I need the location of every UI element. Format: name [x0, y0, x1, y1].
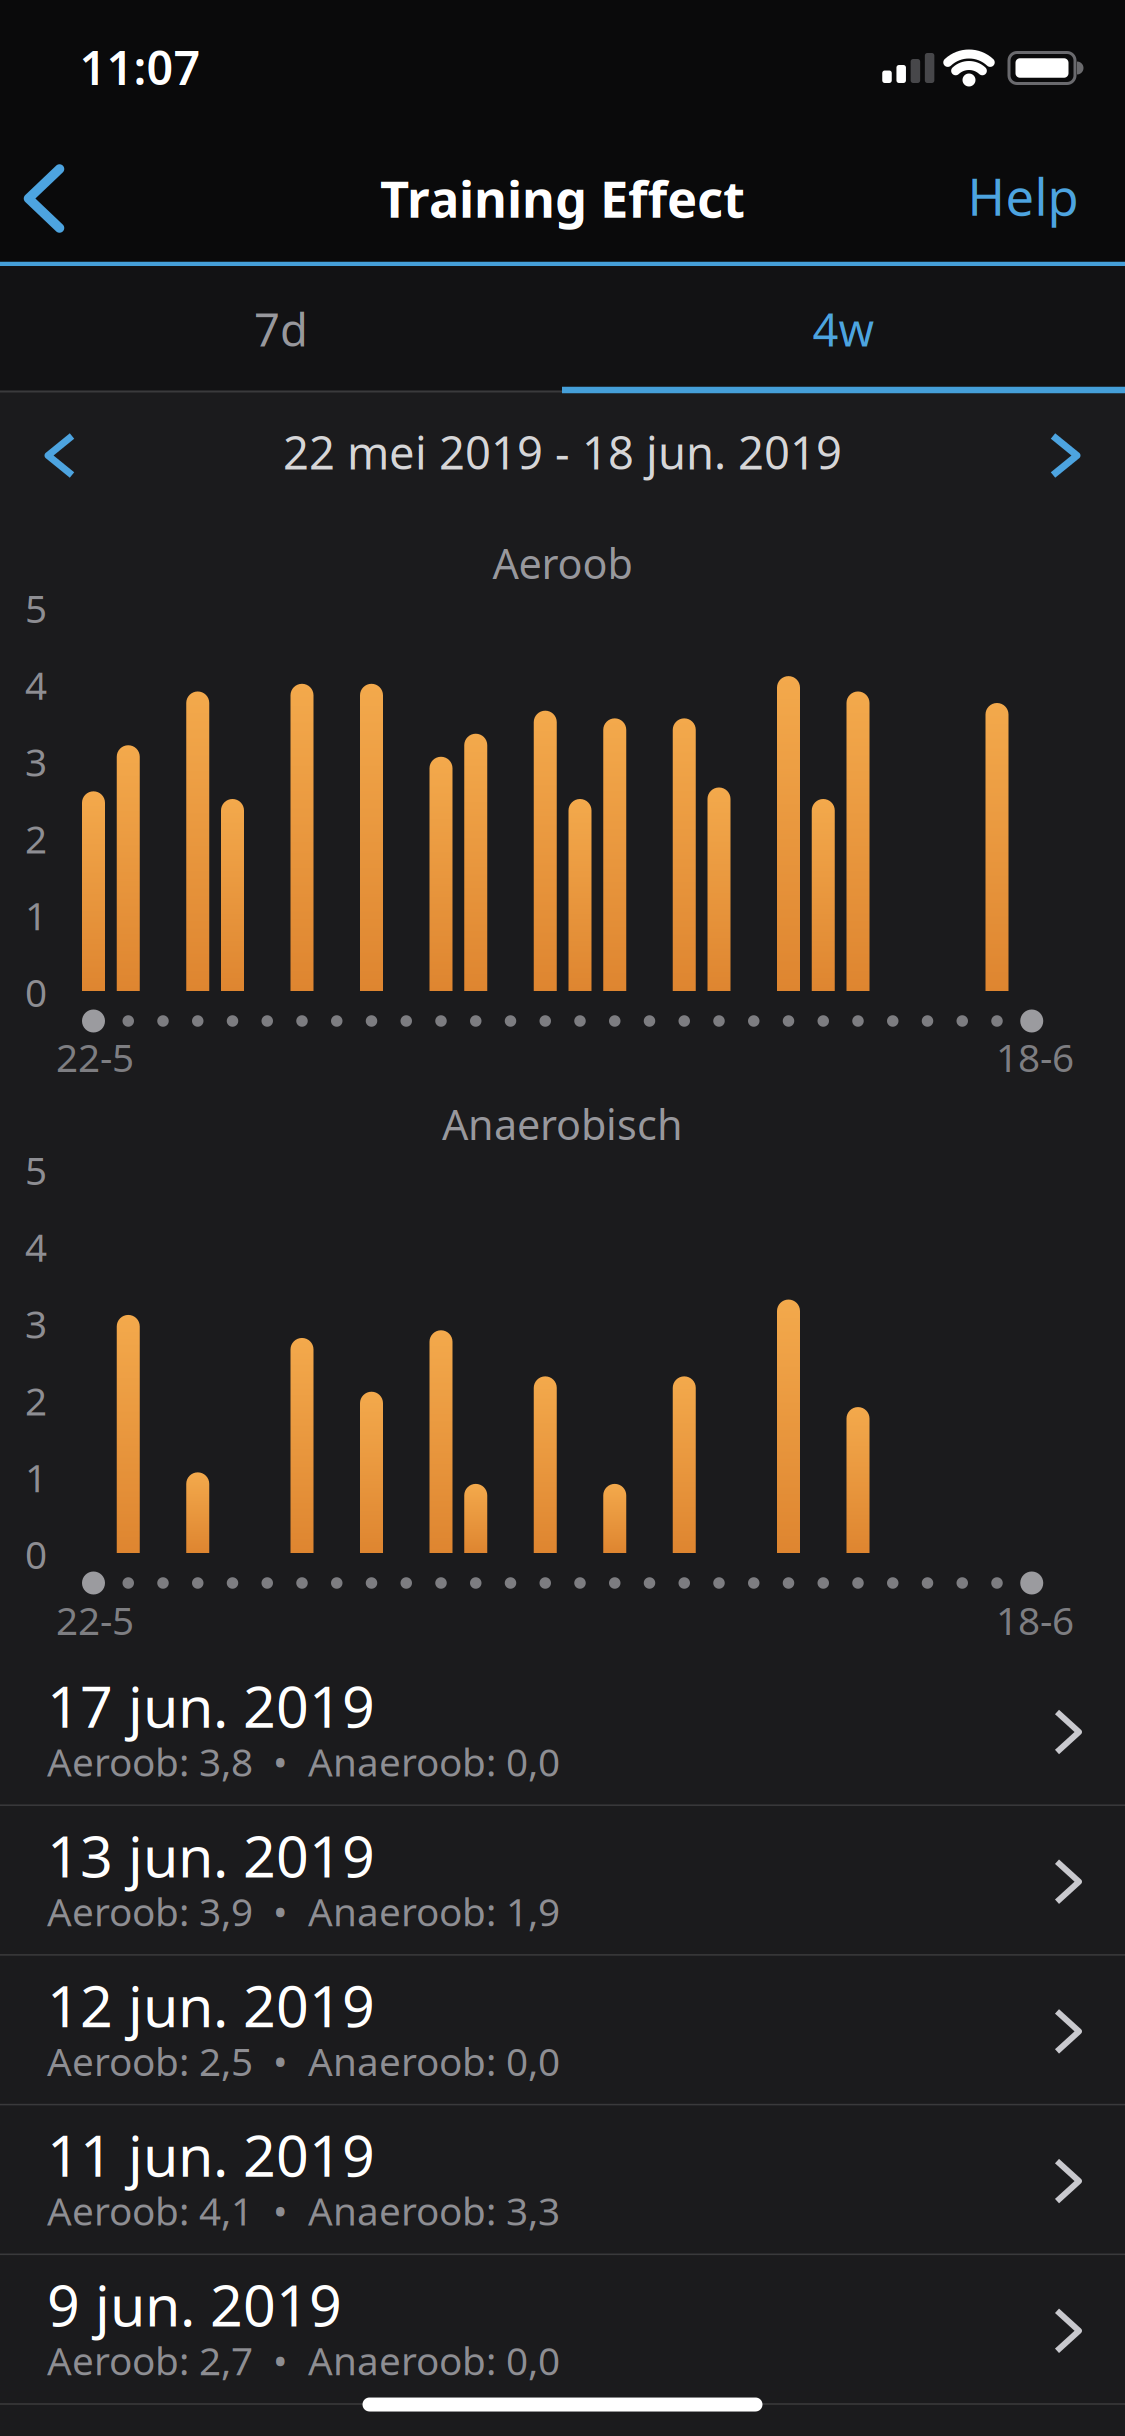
staticText: 17 jun. 2019: [47, 1667, 375, 1743]
staticText: Help: [967, 162, 1078, 230]
staticText: Aeroob: 3,8 • Anaeroob: 0,0: [47, 1736, 560, 1787]
button[interactable]: Help: [957, 150, 1088, 242]
staticText: 5: [25, 582, 47, 634]
staticText: 13 jun. 2019: [47, 1817, 375, 1893]
staticText: 2: [25, 1375, 47, 1426]
staticText: Aeroob: 3,9 • Anaeroob: 1,9: [47, 1885, 560, 1937]
staticText: Aeroob: 2,5 • Anaeroob: 0,0: [47, 2035, 560, 2086]
staticText: Aeroob: 4,1 • Anaeroob: 3,3: [47, 2185, 560, 2236]
staticText: 4: [25, 659, 47, 710]
staticText: 7d: [254, 299, 308, 359]
button[interactable]: 13 jun. 2019: [0, 1805, 1125, 1955]
staticText: 1: [25, 1451, 47, 1503]
staticText: 4w: [812, 299, 874, 359]
staticText: 1: [25, 889, 47, 941]
staticText: Aeroob: [492, 536, 632, 590]
staticText: 9 jun. 2019: [47, 2266, 342, 2342]
staticText: 3: [25, 736, 47, 787]
button[interactable]: Previous period: [34, 422, 86, 489]
staticText: 22 mei 2019 - 18 jun. 2019: [283, 422, 842, 482]
staticText: 0: [25, 966, 47, 1018]
staticText: 18-6: [996, 1594, 1074, 1646]
button[interactable]: 11 jun. 2019: [0, 2105, 1125, 2254]
staticText: 0: [25, 1528, 47, 1580]
staticText: Training Effect: [380, 164, 745, 232]
button[interactable]: 9 jun. 2019: [0, 2254, 1125, 2404]
staticText: 22-5: [56, 1031, 134, 1083]
staticText: Anaerobisch: [442, 1097, 683, 1151]
staticText: 11 jun. 2019: [47, 2116, 375, 2193]
button[interactable]: 7d: [0, 266, 562, 392]
button[interactable]: 12 jun. 2019: [0, 1955, 1125, 2105]
staticText: 12 jun. 2019: [47, 1967, 375, 2043]
staticText: Aeroob: 2,7 • Anaeroob: 0,0: [47, 2335, 560, 2386]
staticText: 22-5: [56, 1594, 134, 1646]
staticText: 4: [25, 1221, 47, 1272]
button[interactable]: 17 jun. 2019: [0, 1655, 1125, 1805]
staticText: 3: [25, 1298, 47, 1349]
button[interactable]: 4w: [562, 266, 1124, 392]
staticText: 2: [25, 813, 47, 864]
button[interactable]: Back: [14, 155, 73, 242]
staticText: 5: [25, 1144, 47, 1196]
staticText: 11:07: [79, 36, 200, 98]
staticText: 18-6: [996, 1031, 1074, 1083]
button[interactable]: Next period: [1039, 422, 1091, 489]
